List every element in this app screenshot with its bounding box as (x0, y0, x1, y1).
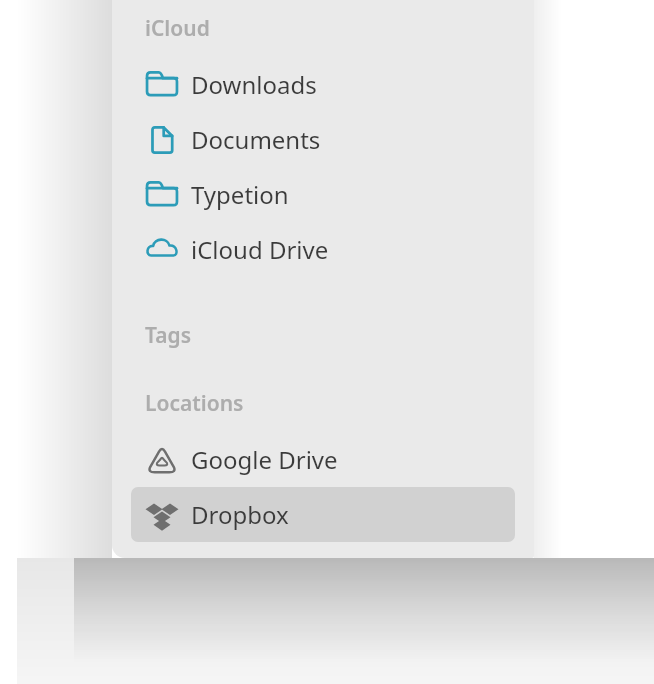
staticText: iCloud (145, 14, 210, 43)
staticText: iCloud Drive (191, 233, 329, 266)
button[interactable]: iCloud Drive (131, 222, 515, 277)
staticText: Locations (145, 389, 244, 418)
button[interactable]: Downloads (131, 57, 515, 112)
staticText: Downloads (191, 68, 317, 101)
staticText: Tags (145, 321, 192, 350)
button[interactable]: Google Drive (131, 432, 515, 487)
button[interactable]: Typetion (131, 167, 515, 222)
button[interactable]: Documents (131, 112, 515, 167)
button[interactable]: Dropbox (131, 487, 515, 542)
staticText: Typetion (191, 178, 289, 211)
staticText: Dropbox (191, 498, 289, 531)
staticText: Google Drive (191, 443, 338, 476)
staticText: Documents (191, 123, 321, 156)
